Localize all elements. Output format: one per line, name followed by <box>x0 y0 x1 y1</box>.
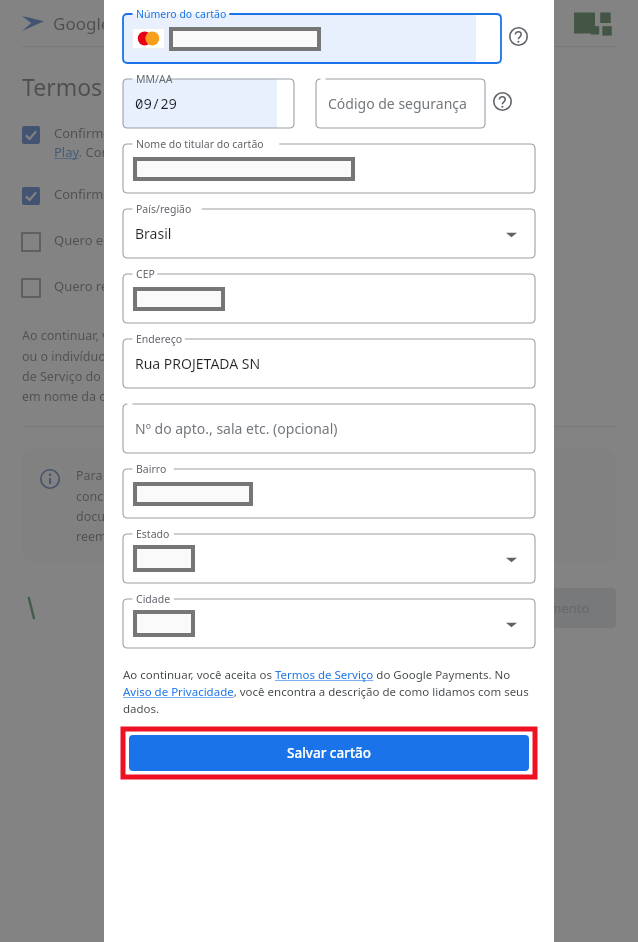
button[interactable]: Salvar cartão <box>129 735 529 771</box>
staticText: Termos <box>22 71 103 102</box>
button[interactable]: Selecionar país <box>501 224 521 244</box>
staticText: MM/AA <box>136 72 173 86</box>
button[interactable]: Aceitar e pagamento <box>462 599 590 617</box>
staticText: Número do cartão <box>136 7 227 21</box>
staticText: Rua PROJETADA SN <box>135 354 261 373</box>
staticText: Código de segurança <box>328 94 467 113</box>
staticText: Endereço <box>136 332 183 346</box>
staticText: Quero receber pesquisas sobre minha expe… <box>54 277 364 295</box>
button[interactable]: Quero e-mails com ofertas especiais e no… <box>22 231 616 251</box>
staticText: Cidade <box>136 592 171 606</box>
button[interactable]: Endereço <box>123 334 535 388</box>
button[interactable]: Selecionar cidade <box>501 614 521 634</box>
button[interactable]: Código de segurança <box>316 74 485 128</box>
staticText: Para sua segurança, pode ser necessário … <box>76 467 497 544</box>
button[interactable]: Estado <box>123 529 535 583</box>
button[interactable]: Ajuda sobre o número do cartão <box>501 19 535 53</box>
button[interactable]: Ajuda sobre o código de segurança <box>485 84 519 118</box>
staticText: Confirmo que aceito os termos adicionais… <box>54 185 377 203</box>
staticText: Google Play <box>53 12 148 35</box>
button[interactable]: Confirmo que li e aceito os Termos de Se… <box>22 124 616 161</box>
button[interactable]: Confirmo que aceito os termos adicionais… <box>22 185 616 205</box>
staticText: Nº do apto., sala etc. (opcional) <box>135 419 338 438</box>
button[interactable]: Selecionar estado <box>501 549 521 569</box>
staticText: CEP <box>136 267 155 281</box>
button[interactable]: Nº do apto., sala etc. (opcional) <box>123 399 535 453</box>
button[interactable]: País/região <box>123 204 535 258</box>
button[interactable]: MM/AA <box>123 74 294 128</box>
staticText: Salvar cartão <box>287 744 372 762</box>
staticText: 09/29 <box>135 94 177 113</box>
staticText: Estado <box>136 527 170 541</box>
staticText: Brasil <box>135 224 172 243</box>
staticText: País/região <box>136 202 192 216</box>
button[interactable]: Bairro <box>123 464 535 518</box>
staticText: Nome do titular do cartão <box>136 137 264 151</box>
button[interactable]: Nome do titular do cartão <box>123 139 535 193</box>
staticText: Bairro <box>136 462 167 476</box>
staticText: Aceitar e pagamento <box>462 599 590 617</box>
staticText: Confirmo que li e aceito os Termos de Se… <box>54 124 398 161</box>
button[interactable]: Número do cartão <box>123 9 501 63</box>
button[interactable]: Quero receber pesquisas sobre minha expe… <box>22 277 616 297</box>
button[interactable]: CEP <box>123 269 535 323</box>
staticText: Ao continuar, você aceita os Termos de S… <box>123 667 535 717</box>
staticText: Ao continuar, você confirma que é o titu… <box>22 327 456 404</box>
button[interactable]: Cidade <box>123 594 535 648</box>
staticText: Quero e-mails com ofertas especiais e no… <box>54 231 355 249</box>
